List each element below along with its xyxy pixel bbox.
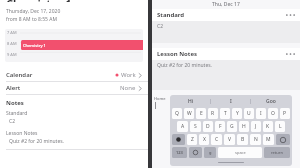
staticText: space: [235, 150, 246, 155]
button[interactable]: G: [227, 121, 237, 132]
staticText: g: [209, 150, 212, 155]
button[interactable]: D: [203, 121, 213, 132]
button[interactable]: I: [256, 108, 266, 119]
staticText: Home: [154, 96, 166, 101]
button[interactable]: E: [196, 108, 206, 119]
staticText: Work: [121, 71, 136, 79]
button[interactable]: Lesson Notes: [152, 48, 300, 90]
staticText: R: [211, 110, 215, 117]
button[interactable]: 7 AM: [5, 29, 143, 62]
staticText: V: [228, 136, 232, 143]
button[interactable]: Y: [232, 108, 242, 119]
staticText: Y: [236, 110, 239, 117]
staticText: Lesson Notes: [6, 130, 38, 137]
staticText: O: [271, 110, 275, 117]
staticText: E: [200, 110, 203, 117]
staticText: 7 AM: [7, 30, 17, 35]
button[interactable]: Emoji: [189, 147, 202, 158]
button[interactable]: M: [263, 134, 274, 145]
button[interactable]: Notes: [0, 95, 148, 145]
button[interactable]: Hi: [172, 97, 210, 106]
staticText: S: [194, 123, 197, 130]
staticText: F: [219, 123, 222, 130]
staticText: Calendar: [6, 71, 33, 79]
button[interactable]: X: [199, 134, 209, 145]
staticText: return: [271, 150, 283, 155]
staticText: M: [266, 136, 271, 143]
staticText: H: [242, 123, 246, 130]
button[interactable]: N: [250, 134, 261, 145]
button[interactable]: B: [237, 134, 248, 145]
button[interactable]: L: [275, 121, 285, 132]
button[interactable]: C: [211, 134, 222, 145]
button[interactable]: Dictation: [204, 147, 216, 158]
button[interactable]: Chemistry 1: [21, 40, 143, 50]
button[interactable]: Calendar: [0, 69, 148, 81]
staticText: Hi: [188, 98, 194, 105]
staticText: 123: [176, 150, 183, 155]
staticText: Chemistry 1: [6, 0, 72, 2]
button[interactable]: W: [184, 108, 194, 119]
button[interactable]: A: [177, 121, 188, 132]
staticText: Alert: [6, 84, 21, 92]
button[interactable]: K: [263, 121, 273, 132]
staticText: Z: [191, 136, 194, 143]
staticText: W: [187, 110, 192, 117]
staticText: U: [247, 110, 251, 117]
staticText: Chemistry 1: [23, 43, 46, 48]
staticText: P: [283, 110, 287, 117]
button[interactable]: Shift: [172, 134, 185, 145]
button[interactable]: H: [239, 121, 249, 132]
staticText: Notes: [6, 99, 24, 107]
staticText: from 8 AM to 8:55 AM: [6, 16, 57, 23]
button[interactable]: V: [224, 134, 235, 145]
staticText: Standard: [6, 110, 28, 117]
button[interactable]: I: [211, 97, 250, 106]
other: More options: [286, 52, 295, 56]
button[interactable]: Z: [187, 134, 197, 145]
staticText: X: [203, 136, 206, 143]
staticText: C2: [157, 23, 164, 30]
staticText: Standard: [157, 11, 185, 19]
staticText: C: [215, 136, 219, 143]
staticText: T: [224, 110, 227, 117]
staticText: I: [260, 110, 262, 117]
staticText: L: [279, 123, 282, 130]
button[interactable]: U: [244, 108, 254, 119]
button[interactable]: Standard: [152, 9, 300, 43]
button[interactable]: R: [208, 108, 218, 119]
button[interactable]: Q: [172, 108, 182, 119]
staticText: Goo: [266, 98, 276, 105]
other: More options: [286, 13, 295, 17]
staticText: D: [206, 123, 210, 130]
staticText: C2: [9, 118, 16, 125]
staticText: Quiz #2 for 20 minutes.: [9, 138, 64, 145]
button[interactable]: S: [190, 121, 201, 132]
staticText: G: [230, 123, 234, 130]
staticText: B: [241, 136, 245, 143]
button[interactable]: return: [264, 147, 290, 158]
button[interactable]: Goo: [251, 97, 290, 106]
button[interactable]: Backspace: [276, 134, 290, 145]
button[interactable]: P: [280, 108, 290, 119]
staticText: Thu, Dec 17: [212, 1, 240, 8]
button[interactable]: Alert: [0, 82, 148, 94]
button[interactable]: Numbers: [172, 147, 187, 158]
button[interactable]: O: [268, 108, 278, 119]
staticText: A: [181, 123, 185, 130]
staticText: 9 AM: [7, 52, 17, 57]
staticText: Quiz #2 for 20 minutes.: [157, 62, 212, 69]
button[interactable]: J: [251, 121, 261, 132]
staticText: 8 AM: [7, 41, 17, 46]
staticText: None: [120, 84, 136, 92]
button[interactable]: space: [218, 147, 262, 158]
staticText: I: [230, 98, 232, 105]
staticText: J: [255, 123, 257, 130]
button[interactable]: F: [215, 121, 225, 132]
staticText: Thursday, Dec 17, 2020: [6, 8, 61, 15]
button[interactable]: T: [220, 108, 230, 119]
staticText: Q: [175, 110, 179, 117]
staticText: Lesson Notes: [157, 50, 197, 58]
staticText: K: [266, 123, 270, 130]
staticText: N: [254, 136, 258, 143]
